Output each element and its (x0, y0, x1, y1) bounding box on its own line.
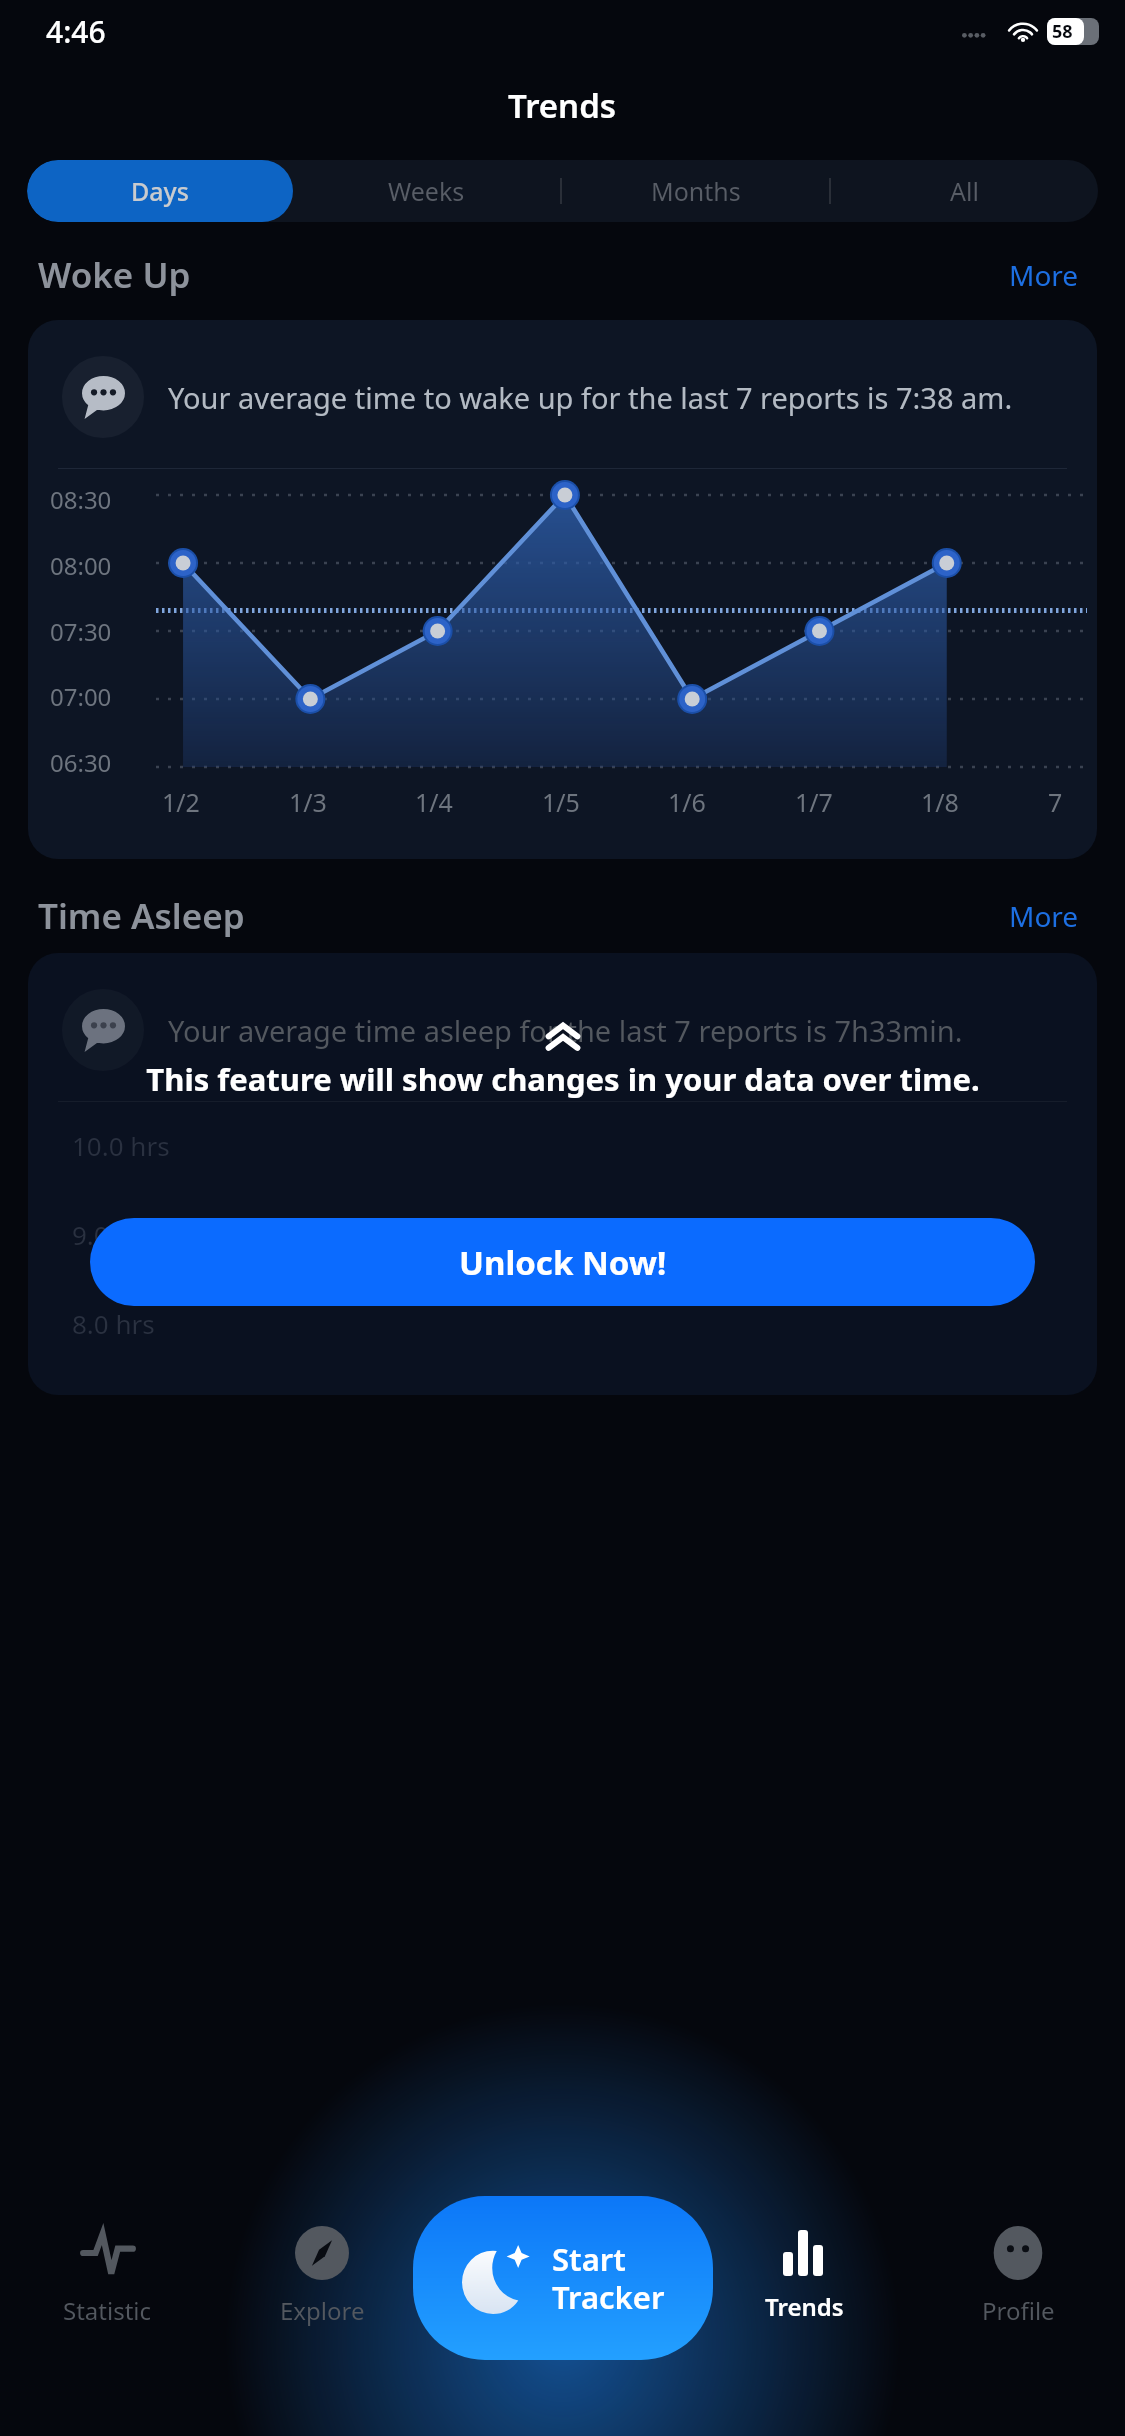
button[interactable]: More (1001, 248, 1087, 302)
staticText: 08:30 (50, 483, 112, 516)
staticText: 1/2 (162, 785, 200, 819)
staticText: Start Tracker (552, 2238, 665, 2318)
staticText: 58 (1052, 19, 1073, 44)
staticText: Months (651, 174, 741, 208)
staticText: 1/8 (921, 785, 959, 819)
button[interactable]: Start Tracker (413, 2196, 713, 2360)
button[interactable]: More (1001, 889, 1087, 943)
staticText: 1/4 (415, 785, 453, 819)
staticText: Weeks (388, 174, 465, 208)
staticText: 1/6 (668, 785, 706, 819)
button[interactable]: Months (562, 160, 829, 222)
button[interactable]: Days (27, 160, 293, 222)
staticText: 1/3 (289, 785, 327, 819)
staticText: Unlock Now! (459, 1240, 667, 1285)
staticText: More (1009, 897, 1079, 935)
staticText: Your average time asleep for the last 7 … (168, 1011, 963, 1050)
staticText: More (1009, 256, 1079, 294)
button[interactable]: Profile (911, 2222, 1125, 2331)
button[interactable]: All (831, 160, 1098, 222)
staticText: 08:00 (50, 549, 112, 582)
staticText: 1/5 (542, 785, 580, 819)
button[interactable]: Your average time asleep for the last 7 … (28, 953, 1097, 1395)
staticText: Trends (508, 83, 617, 128)
staticText: 07:00 (50, 680, 112, 713)
button[interactable]: Weeks (293, 160, 560, 222)
staticText: Woke Up (38, 251, 191, 299)
staticText: This feature will show changes in your d… (146, 1058, 980, 1100)
staticText: All (950, 174, 979, 208)
button[interactable]: Statistic (0, 2222, 215, 2331)
staticText: 1/7 (795, 785, 833, 819)
staticText: Profile (982, 2294, 1055, 2327)
staticText: 8.0 hrs (72, 1306, 155, 1341)
staticText: Statistic (63, 2294, 152, 2327)
button[interactable]: Explore (215, 2222, 429, 2331)
staticText: Time Asleep (38, 892, 245, 940)
button[interactable]: Trends (697, 2222, 911, 2327)
staticText: 9.0 hrs (72, 1217, 155, 1252)
staticText: 07:30 (50, 615, 112, 648)
staticText: Trends (765, 2290, 844, 2323)
staticText: 06:30 (50, 746, 112, 779)
staticText: 7 (1048, 785, 1063, 819)
staticText: Days (131, 174, 189, 208)
staticText: Your average time to wake up for the las… (168, 378, 1013, 417)
staticText: 4:46 (46, 11, 106, 52)
staticText: 10.0 hrs (72, 1128, 170, 1163)
button[interactable]: Unlock Now! (90, 1218, 1035, 1306)
button[interactable]: Your average time to wake up for the las… (28, 320, 1097, 859)
staticText: Explore (280, 2294, 365, 2327)
